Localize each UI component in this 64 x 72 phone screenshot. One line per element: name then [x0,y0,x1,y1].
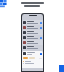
button[interactable] [23,25,42,30]
button[interactable] [23,57,28,59]
button[interactable] [23,61,42,62]
button[interactable]: Send [22,51,43,68]
button[interactable] [23,45,42,50]
button[interactable] [23,30,42,35]
button[interactable] [23,63,42,64]
button[interactable] [23,20,42,25]
button[interactable]: Logo [0,0,7,6]
button[interactable] [23,40,42,45]
button[interactable]: Send [40,53,42,55]
button[interactable] [23,35,42,40]
button[interactable] [29,57,35,59]
